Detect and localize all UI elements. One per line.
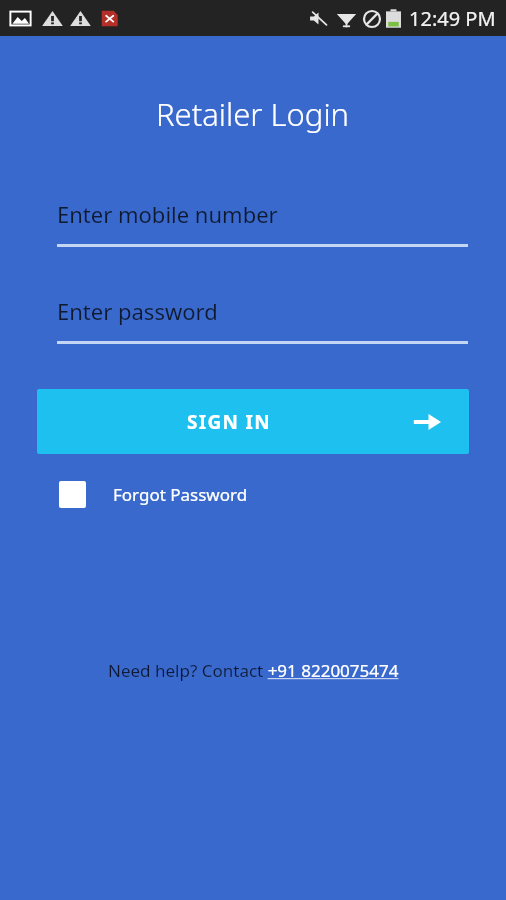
button[interactable]: Enter mobile number [57, 199, 468, 247]
button[interactable]: Forgot Password [59, 481, 248, 508]
button[interactable]: Enter password [57, 296, 468, 344]
button[interactable]: SIGN IN [37, 389, 469, 454]
staticText: Forgot Password [113, 483, 248, 506]
staticText: Enter password [57, 296, 218, 326]
staticText: SIGN IN [187, 409, 271, 435]
staticText: Enter mobile number [57, 199, 278, 229]
staticText: 12:49 PM [409, 5, 496, 32]
other: Sign in [412, 407, 442, 437]
button[interactable]: Need help? Contact +91 8220075474 [108, 659, 399, 682]
staticText: Retailer Login [156, 93, 350, 135]
